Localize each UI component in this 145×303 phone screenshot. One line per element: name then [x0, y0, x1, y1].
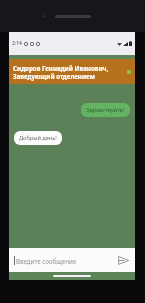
staticText: Сидоров Геннадий Иванович,	[13, 64, 109, 72]
button[interactable]: Добрый день!	[14, 131, 62, 145]
staticText: Добрый день!	[19, 134, 57, 142]
staticText: Заведующий отделением	[13, 72, 95, 80]
staticText: Введите сообщение	[16, 257, 77, 265]
button[interactable]: Send	[115, 252, 131, 268]
staticText: 2:14	[12, 40, 22, 47]
button[interactable]: Здравствуйте!	[81, 103, 130, 117]
staticText: Здравствуйте!	[86, 106, 125, 114]
other: Online status	[127, 70, 131, 74]
button[interactable]: Введите сообщение	[14, 256, 115, 265]
button[interactable]: Сидоров Геннадий Иванович,	[9, 59, 135, 84]
